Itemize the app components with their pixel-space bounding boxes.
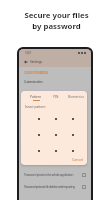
button[interactable]: Back: [24, 60, 28, 64]
staticText: Customize colors: [24, 80, 43, 84]
staticText: Insert pattern: [25, 105, 46, 109]
button[interactable]: Cancel: [72, 157, 87, 165]
button[interactable]: PIN: [46, 94, 66, 102]
staticText: 14:18: [25, 51, 31, 55]
staticText: by password: [32, 21, 81, 32]
button[interactable]: Biometrics: [66, 94, 86, 102]
staticText: PIN: [53, 95, 59, 99]
staticText: Settings: [30, 60, 43, 64]
button[interactable]: Password protects the whole application: [19, 171, 91, 178]
staticText: COLOR CUSTOMIZATION: [24, 71, 48, 75]
staticText: Secure your files: [24, 10, 89, 21]
staticText: Password protects file deletion and impo…: [24, 185, 81, 189]
staticText: Password protects the whole application: [24, 173, 81, 177]
staticText: Pattern: [30, 95, 42, 99]
staticText: Biometrics: [68, 95, 84, 99]
button[interactable]: Pattern: [26, 94, 46, 102]
button[interactable]: Password protects file deletion and impo…: [19, 183, 91, 190]
